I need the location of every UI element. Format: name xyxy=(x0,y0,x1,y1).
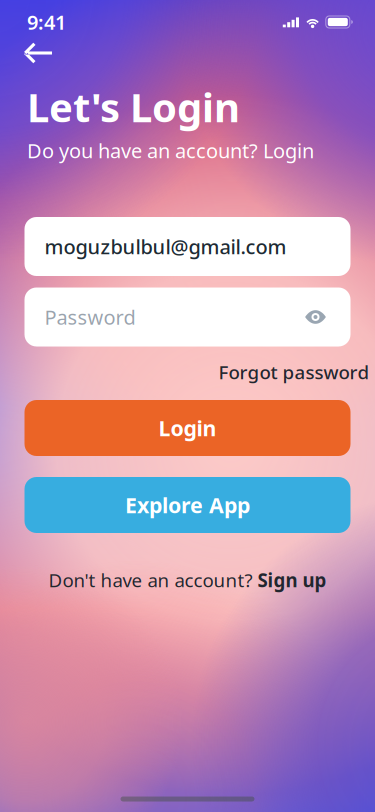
staticText: Let's Login xyxy=(27,80,240,133)
staticText: Forgot password xyxy=(218,360,369,384)
staticText: Login xyxy=(158,414,216,442)
button[interactable]: Forgot password xyxy=(218,361,369,383)
staticText: 9:41 xyxy=(27,9,66,35)
staticText: moguzbulbul@gmail.com xyxy=(44,233,286,260)
button[interactable]: Back xyxy=(16,31,60,75)
staticText: Do you have an account? Login xyxy=(27,137,314,164)
staticText: Don't have an account? xyxy=(48,568,252,592)
staticText: Explore App xyxy=(125,491,250,519)
staticText: Password xyxy=(44,304,135,330)
button[interactable]: Login xyxy=(24,400,350,456)
button[interactable]: Don't have an account? xyxy=(48,568,326,592)
button[interactable]: Show password xyxy=(300,302,330,332)
staticText: Sign up xyxy=(257,568,326,592)
button[interactable]: Explore App xyxy=(24,477,350,533)
